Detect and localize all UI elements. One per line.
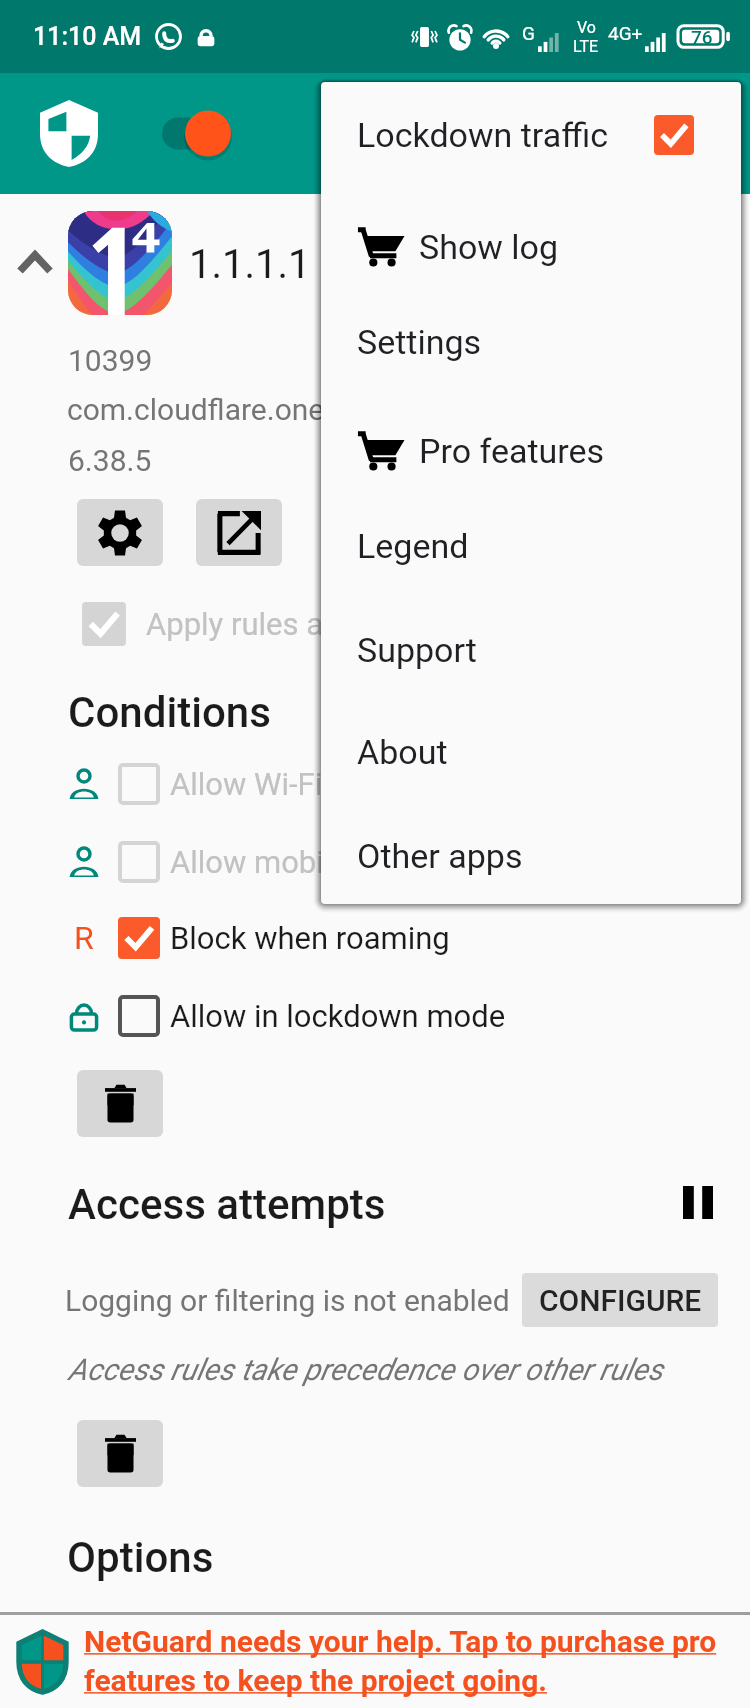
button[interactable]: Support [321, 602, 741, 698]
button[interactable]: Enable firewall [152, 96, 244, 171]
button[interactable]: Allow mobile [60, 826, 700, 898]
staticText: Conditions [68, 688, 271, 737]
button[interactable]: Legend [321, 498, 741, 594]
staticText: LTE [573, 37, 599, 56]
button[interactable]: Clear log [77, 1420, 163, 1487]
staticText: Logging or filtering is not enabled [65, 1283, 510, 1318]
staticText: R [74, 919, 94, 957]
button[interactable]: Open app [196, 499, 282, 566]
button[interactable]: About [321, 704, 741, 800]
button[interactable]: Settings [321, 294, 741, 390]
staticText: Legend [357, 526, 469, 566]
button[interactable]: NetGuard needs your help. Tap to purchas… [0, 1612, 750, 1708]
button[interactable]: R [60, 902, 700, 974]
staticText: Block when roaming [170, 920, 450, 956]
staticText: CONFIGURE [539, 1283, 702, 1318]
staticText: Allow mobile [170, 844, 348, 880]
staticText: About [357, 732, 448, 772]
staticText: 4G+ [608, 22, 643, 44]
staticText: 10399 [68, 343, 153, 378]
button[interactable]: Clear conditions [77, 1070, 163, 1137]
button[interactable]: Lockdown traffic [321, 87, 741, 183]
button[interactable]: Pause [662, 1166, 734, 1238]
staticText: 1.1.1.1 [189, 241, 311, 288]
staticText: Other apps [357, 836, 523, 876]
button[interactable]: Other apps [321, 808, 741, 904]
staticText: Allow in lockdown mode [170, 998, 506, 1034]
staticText: NetGuard needs your help. Tap to purchas… [84, 1624, 717, 1659]
button[interactable]: App settings [77, 499, 163, 566]
staticText: Pro features [419, 431, 605, 471]
button[interactable]: CONFIGURE [522, 1273, 718, 1327]
staticText: 76 [691, 26, 713, 48]
staticText: com.cloudflare.one [67, 392, 325, 427]
button[interactable]: Apply rules and conditions [76, 596, 496, 652]
button[interactable]: Show log [321, 199, 741, 295]
staticText: 6.38.5 [68, 443, 152, 478]
staticText: Allow Wi-Fi [170, 766, 323, 802]
staticText: Options [67, 1533, 214, 1582]
button[interactable]: Pro features [321, 403, 741, 499]
button[interactable]: Allow Wi-Fi [60, 748, 700, 820]
button[interactable]: Collapse [6, 228, 64, 298]
button[interactable]: NetGuard [40, 100, 98, 167]
staticText: Apply rules and conditions [146, 606, 496, 642]
staticText: Lockdown traffic [357, 115, 609, 155]
staticText: Access attempts [68, 1180, 386, 1229]
button[interactable]: Allow in lockdown mode [60, 980, 700, 1052]
staticText: Show log [419, 227, 559, 267]
staticText: 11:10 AM [33, 22, 142, 51]
staticText: Settings [357, 322, 482, 362]
staticText: features to keep the project going. [84, 1663, 548, 1698]
staticText: Access rules take precedence over other … [68, 1352, 663, 1387]
staticText: Vo [577, 18, 596, 37]
staticText: Support [357, 630, 477, 670]
staticText: G [522, 22, 535, 44]
